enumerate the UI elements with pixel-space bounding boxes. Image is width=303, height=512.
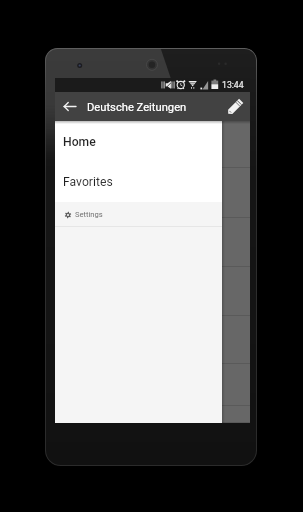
button[interactable]: Settings xyxy=(55,202,222,227)
staticText: Home xyxy=(63,135,96,149)
button[interactable]: Edit xyxy=(224,92,250,121)
staticText: Favorites xyxy=(63,175,113,189)
button[interactable]: Home xyxy=(55,121,222,161)
button[interactable]: Favorites xyxy=(55,161,222,201)
staticText: Deutsche Zeitungen xyxy=(87,101,187,114)
staticText: Settings xyxy=(75,210,103,219)
staticText: 13:44 xyxy=(222,80,244,90)
button[interactable]: Navigate up xyxy=(55,92,82,121)
